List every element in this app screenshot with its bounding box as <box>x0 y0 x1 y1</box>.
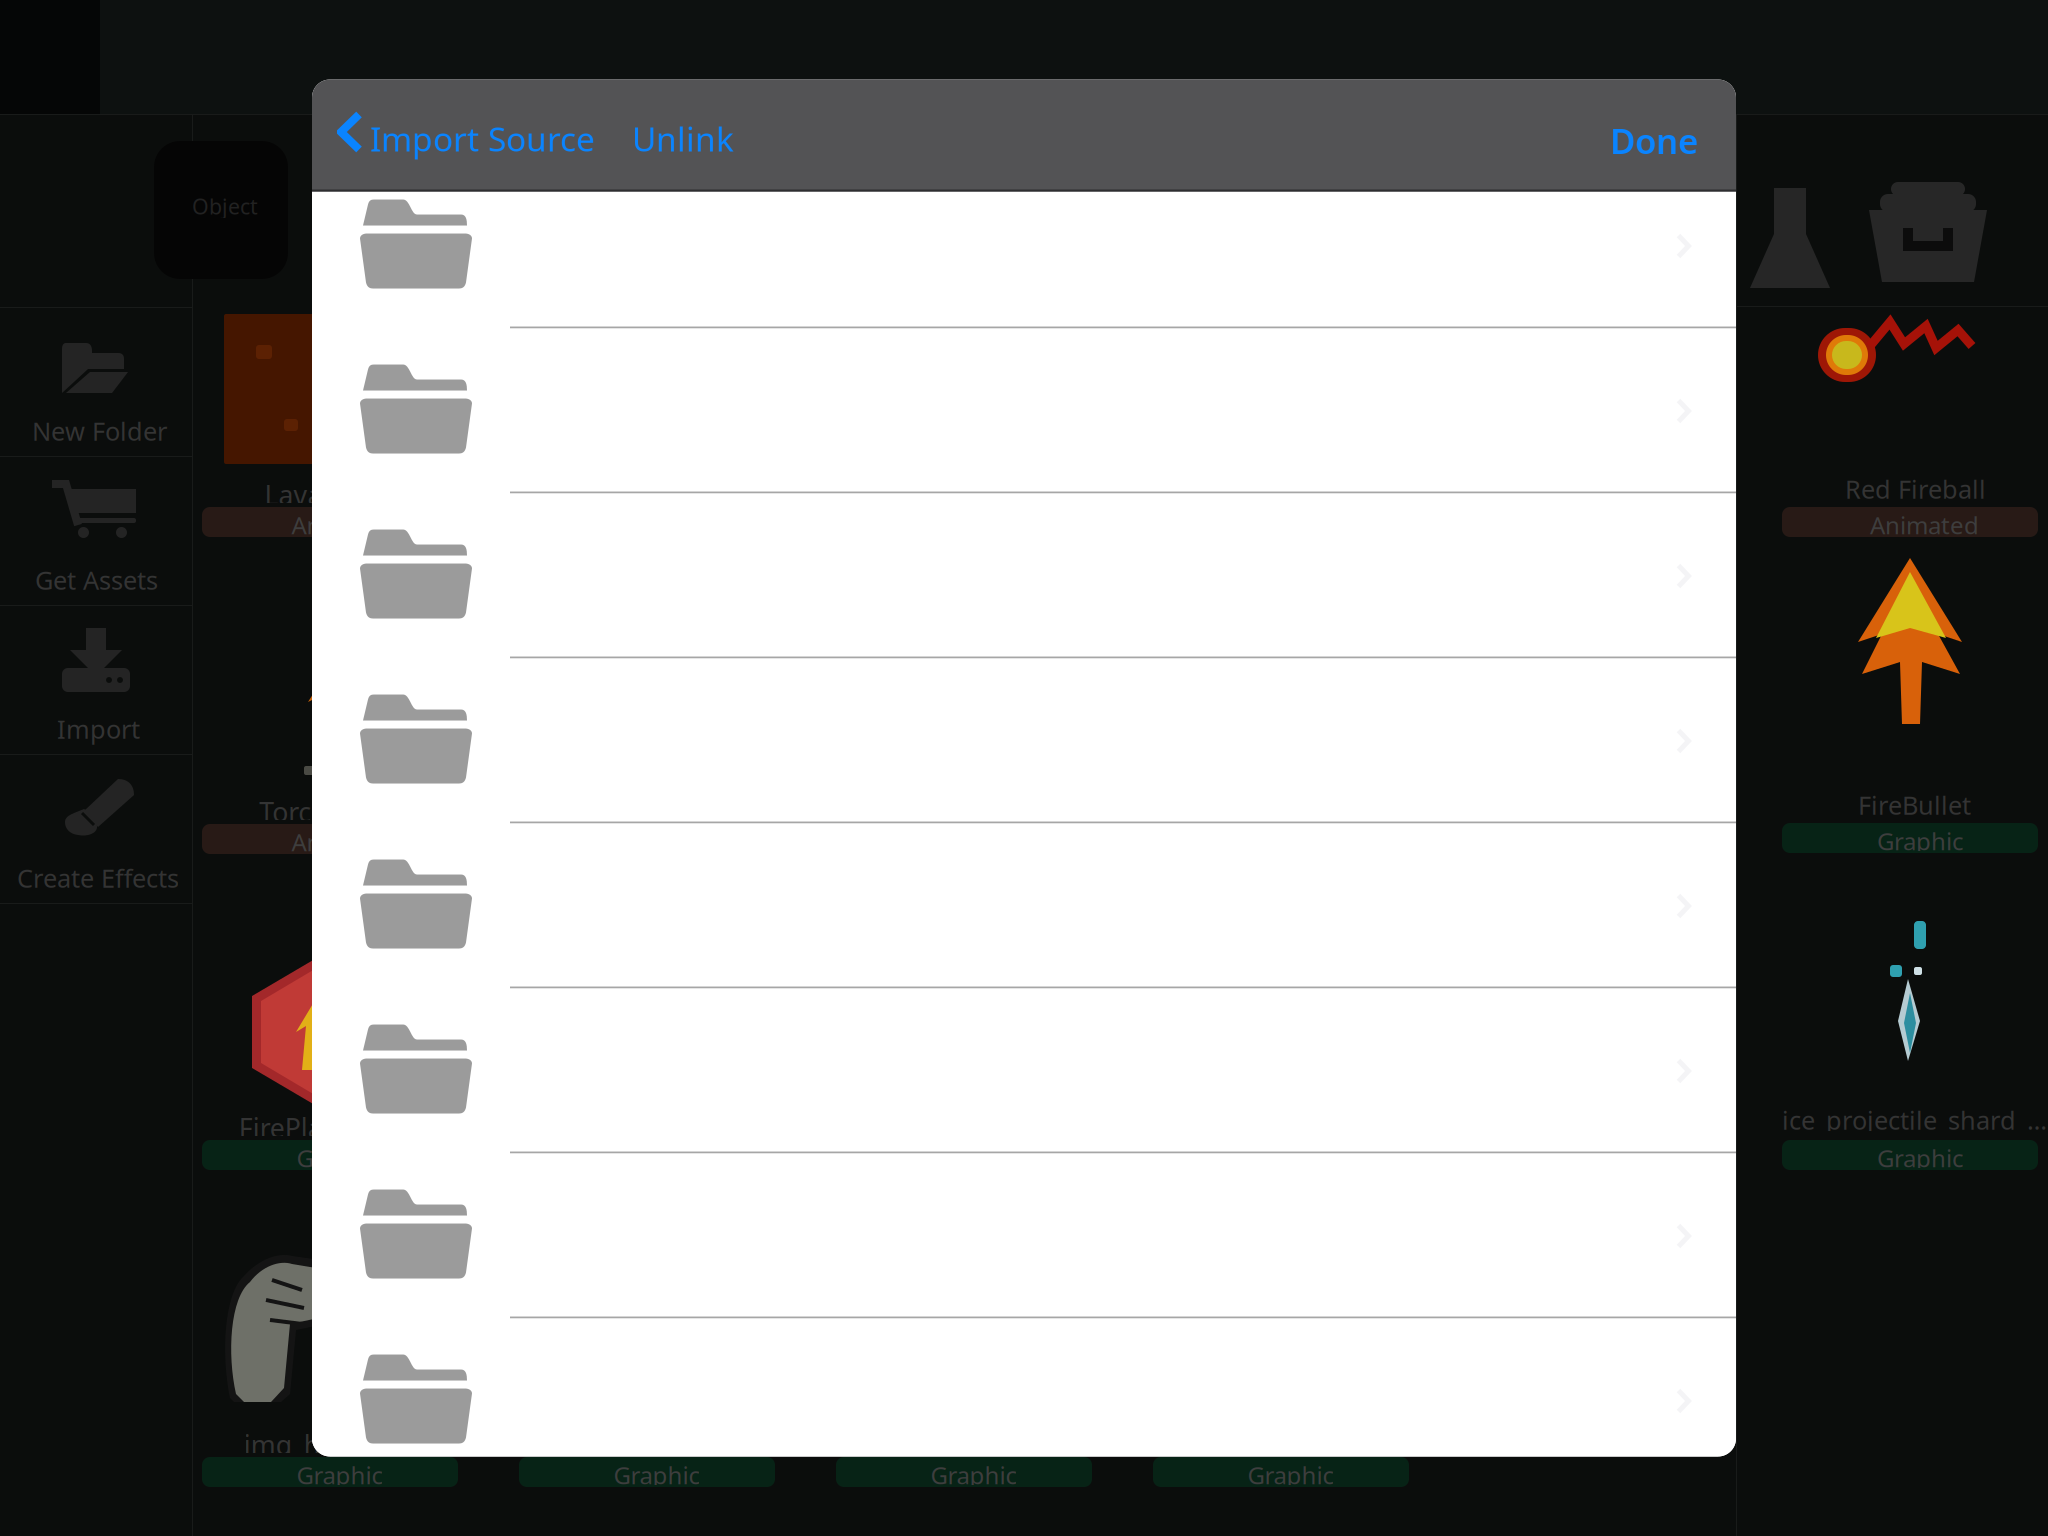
button[interactable]: Ember <box>519 617 835 934</box>
button[interactable]: Spark <box>1153 617 1469 934</box>
staticText: ice_projectile_shard_… <box>1782 1103 2047 1137</box>
staticText: Lava <box>264 477 322 512</box>
staticText: Smoke <box>893 794 978 829</box>
staticText: Create Effects <box>17 861 179 895</box>
staticText: Animated <box>1870 509 1979 541</box>
button[interactable]: Unlink <box>622 79 792 191</box>
staticText: Graphic <box>296 1459 383 1491</box>
staticText: Spark <box>1210 794 1281 829</box>
staticText: img_tap <box>566 1427 667 1462</box>
button[interactable]: FirePlate <box>836 300 1152 617</box>
staticText: Graphic <box>296 1142 383 1174</box>
staticText: Animated <box>292 509 401 541</box>
staticText: Red Fireball <box>1845 472 1986 506</box>
staticText: Graphic <box>930 1142 1017 1174</box>
staticText: Torch <box>259 794 327 829</box>
button[interactable]: Lava <box>202 300 518 617</box>
button[interactable]: Get Assets <box>0 457 192 605</box>
button[interactable]: Burst <box>1153 933 1469 1250</box>
button[interactable]: img_hand <box>1153 300 1469 617</box>
staticText: Import Source <box>370 116 595 161</box>
button[interactable]: Import <box>0 606 192 754</box>
staticText: Object <box>192 192 258 220</box>
staticText: Get Assets <box>35 563 158 597</box>
staticText: Graphic <box>1247 1459 1334 1491</box>
button[interactable]: img_hand <box>202 1250 518 1536</box>
button[interactable]: Folder <box>312 1483 1736 1536</box>
button[interactable]: Folder <box>312 1153 1736 1318</box>
staticText: img_drag <box>878 1427 995 1462</box>
button[interactable]: Folder <box>312 823 1736 988</box>
staticText: Unlink <box>632 116 734 161</box>
staticText: img_hand <box>244 1427 367 1462</box>
button[interactable]: Create Effects <box>0 755 192 903</box>
staticText: New Folder <box>32 414 167 448</box>
staticText: FirePlate <box>239 1110 348 1145</box>
staticText: Graphic <box>1877 1142 1964 1174</box>
staticText: Graphic <box>613 1142 700 1174</box>
staticText: img_pinch <box>1190 1427 1318 1462</box>
staticText: Torch <box>576 477 644 512</box>
button[interactable]: Done <box>1590 79 1760 191</box>
button[interactable]: Torch <box>202 617 518 934</box>
button[interactable]: Torch <box>519 300 835 617</box>
button[interactable]: Folder <box>312 493 1736 658</box>
staticText: Done <box>1610 117 1698 163</box>
staticText: Animated <box>292 826 401 858</box>
staticText: Graphic <box>930 1459 1017 1491</box>
staticText: Graphic <box>1877 825 1964 857</box>
staticText: FireBullet <box>1858 788 1971 822</box>
button[interactable]: Glow <box>519 933 835 1250</box>
button[interactable]: FirePlate <box>202 933 518 1250</box>
button[interactable]: Folder <box>312 1318 1736 1483</box>
button[interactable]: Flash <box>836 933 1152 1250</box>
button[interactable]: Import Source <box>312 79 632 191</box>
staticText: FirePlate <box>873 477 982 512</box>
button[interactable]: Folder <box>312 658 1736 823</box>
button[interactable]: img_pinch <box>1153 1250 1469 1536</box>
staticText: Ember <box>576 794 658 829</box>
staticText: Graphic <box>613 1459 700 1491</box>
button[interactable]: img_tap <box>519 1250 835 1536</box>
button[interactable]: Folder <box>312 328 1736 493</box>
button[interactable]: Folder <box>312 988 1736 1153</box>
button[interactable]: Folder <box>312 163 1736 328</box>
button[interactable]: Smoke <box>836 617 1152 934</box>
button[interactable]: New Folder <box>0 308 192 456</box>
staticText: img_hand <box>1195 477 1318 512</box>
button[interactable]: img_drag <box>836 1250 1152 1536</box>
staticText: Graphic <box>1247 1142 1334 1174</box>
staticText: Import <box>57 712 140 746</box>
